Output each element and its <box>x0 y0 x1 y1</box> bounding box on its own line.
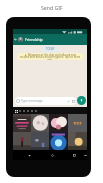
button[interactable] <box>68 132 87 150</box>
staticText: Type a message <box>21 99 43 103</box>
button[interactable]: Back <box>13 37 18 42</box>
button[interactable]: Category <box>26 109 30 113</box>
button[interactable] <box>49 114 68 132</box>
button[interactable] <box>68 114 87 132</box>
button[interactable] <box>31 114 49 132</box>
button[interactable]: 🔒 Messages to this chat and calls are no… <box>17 53 83 60</box>
button[interactable]: More options <box>81 37 86 42</box>
staticText: TODAY <box>46 47 55 51</box>
button[interactable]: Type a message <box>15 97 76 105</box>
button[interactable]: Recents <box>71 152 77 158</box>
button[interactable]: Home <box>49 152 55 158</box>
button[interactable] <box>31 132 49 150</box>
button[interactable]: Back <box>26 152 32 158</box>
staticText: Friendship <box>25 37 43 42</box>
button[interactable]: Category <box>18 109 22 113</box>
button[interactable]: Category <box>34 109 38 113</box>
button[interactable]: Recents <box>14 109 18 113</box>
button[interactable]: Category <box>22 109 26 113</box>
button[interactable]: Category <box>30 109 34 113</box>
button[interactable]: Hide keyboard <box>84 152 87 158</box>
button[interactable] <box>13 132 31 150</box>
button[interactable] <box>49 132 68 150</box>
button[interactable] <box>13 114 31 132</box>
button[interactable]: Voice message <box>77 96 86 105</box>
staticText: Send GIF <box>41 4 63 11</box>
staticText: 🔒 Messages to this chat and calls are no… <box>19 53 81 60</box>
